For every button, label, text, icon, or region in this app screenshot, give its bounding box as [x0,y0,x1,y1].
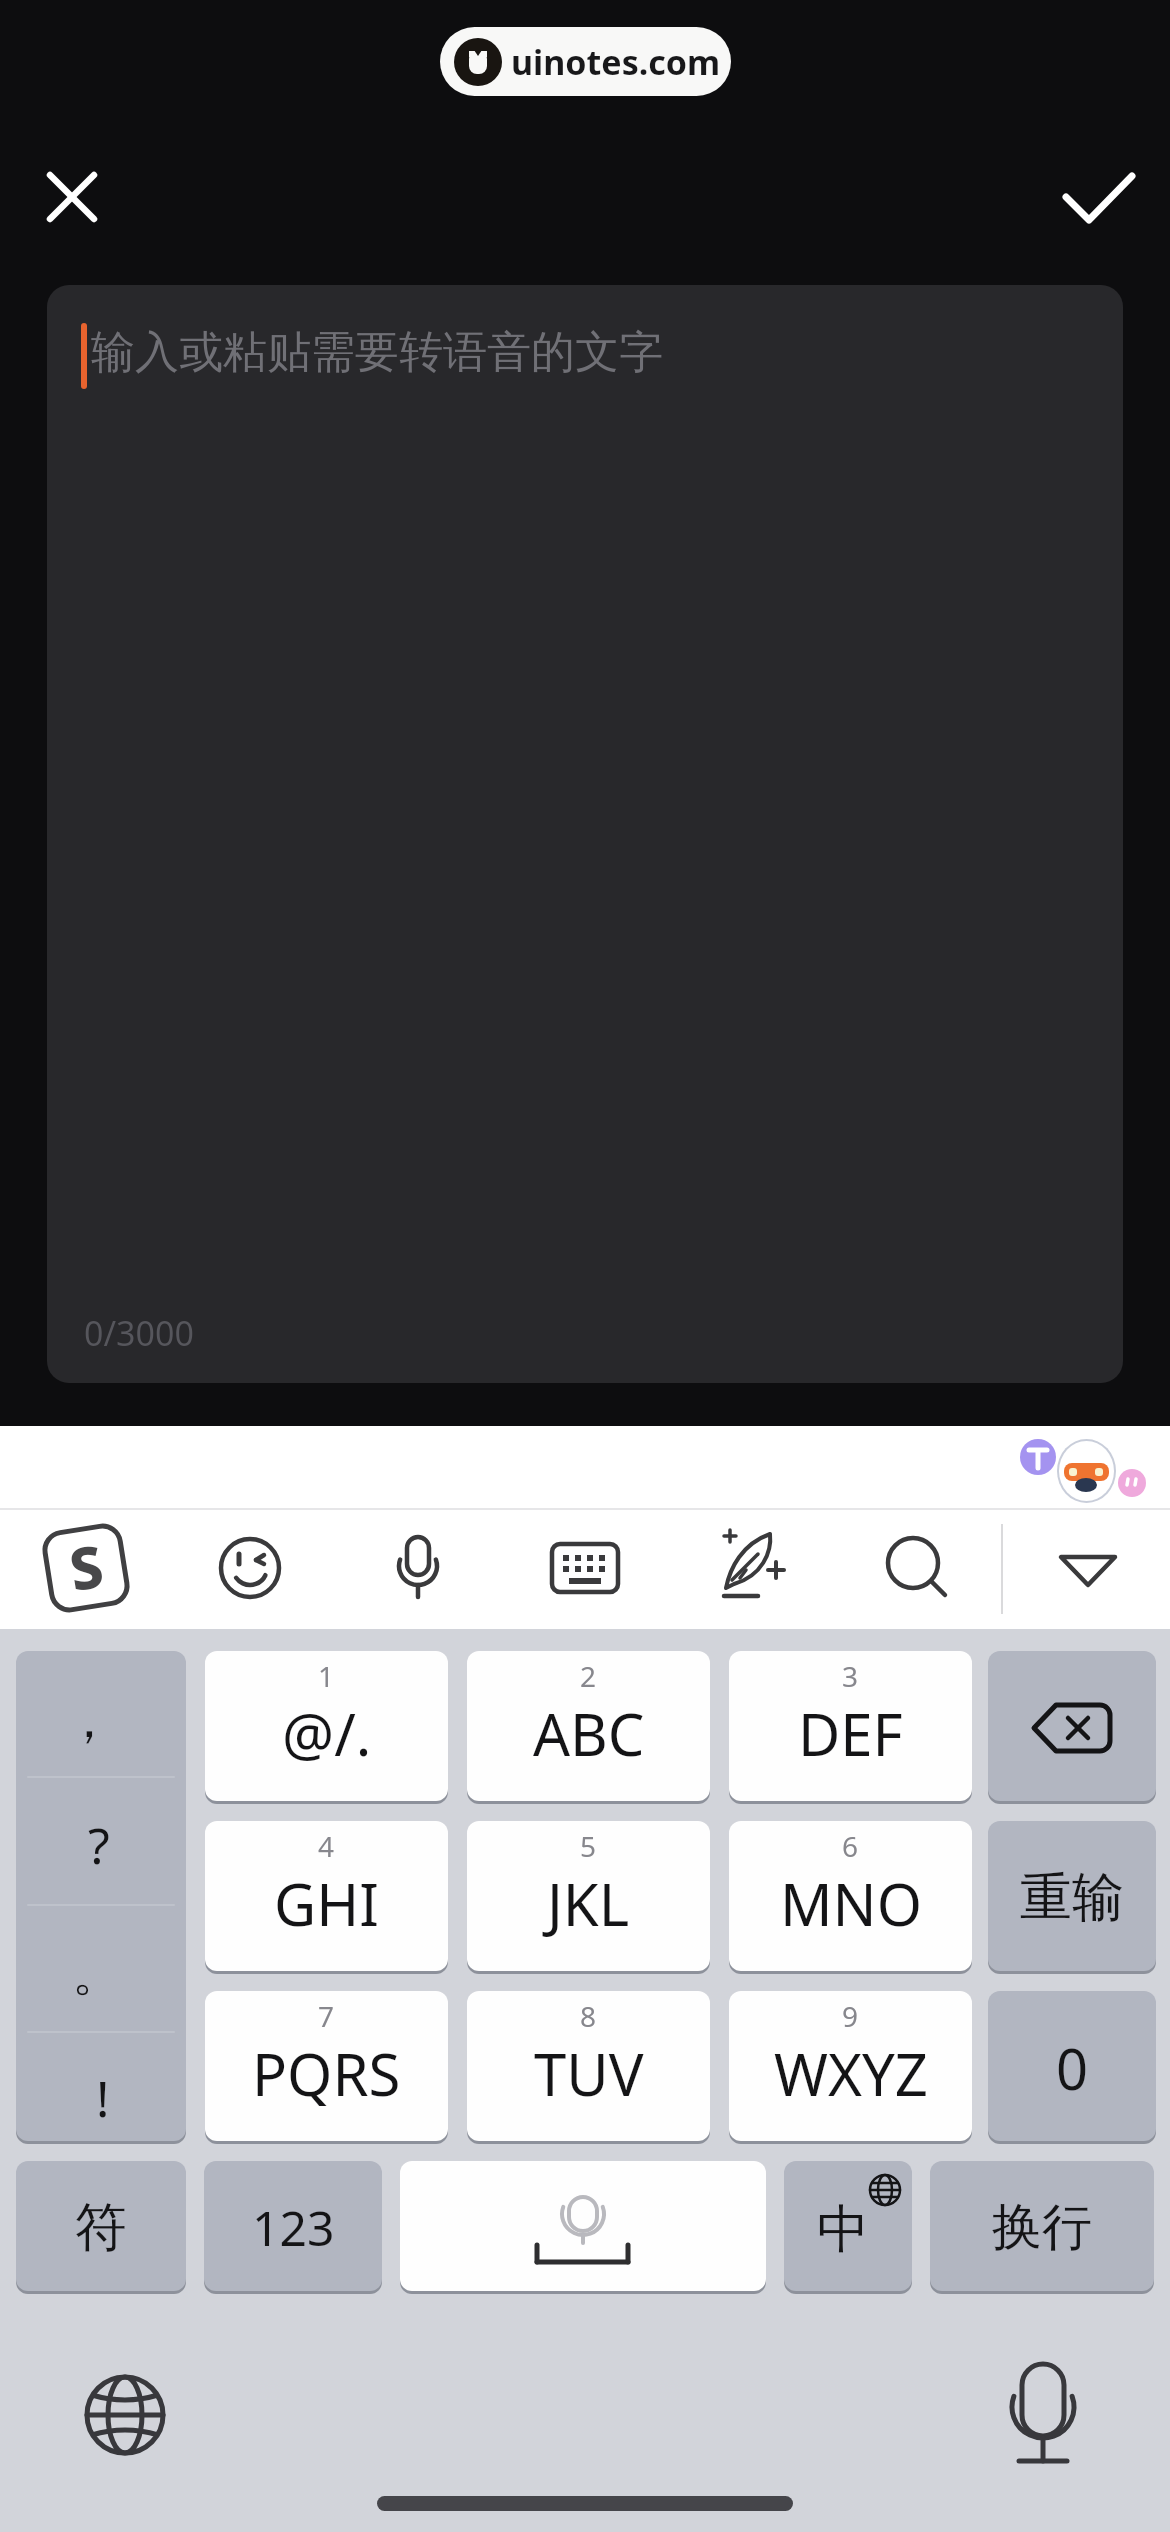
staticText: 9 [842,1997,859,2035]
staticText: 重输 [1020,1865,1124,1931]
staticText: uinotes.com [511,39,721,85]
button[interactable] [363,1509,473,1627]
button[interactable]: ， [16,1651,186,2144]
staticText: 2 [580,1657,597,1695]
button[interactable]: 6 [729,1821,972,1974]
button[interactable]: 输入或粘贴需要转语音的文字 [47,285,1123,1383]
staticText: ABC [533,1694,645,1773]
staticText: 换行 [992,2196,1092,2259]
staticText: 输入或粘贴需要转语音的文字 [91,325,663,380]
button[interactable] [697,1509,807,1627]
button[interactable]: 0 [988,1991,1156,2144]
button[interactable] [400,2161,766,2294]
button[interactable] [1054,157,1144,237]
staticText: 符 [75,2195,127,2261]
button[interactable]: 2 [467,1651,710,1804]
staticText: 1 [318,1657,335,1695]
staticText: 3 [842,1657,859,1695]
button[interactable]: 8 [467,1991,710,2144]
staticText: MNO [780,1864,922,1943]
staticText: 7 [318,1997,335,2035]
staticText: 5 [580,1827,597,1865]
staticText: DEF [798,1694,903,1773]
button[interactable] [975,2345,1111,2490]
button[interactable] [195,1509,305,1627]
button[interactable]: 9 [729,1991,972,2144]
staticText: S [64,1525,109,1608]
button[interactable]: 3 [729,1651,972,1804]
staticText: GHI [274,1864,379,1943]
button[interactable] [1033,1509,1143,1627]
button[interactable]: 123 [204,2161,382,2294]
button[interactable]: 重输 [988,1821,1156,1974]
button[interactable]: 7 [205,1991,448,2144]
staticText: TUV [534,2034,644,2113]
staticText: 0 [1056,2030,1089,2106]
button[interactable] [988,1651,1156,1804]
staticText: 中 [817,2197,869,2263]
staticText: 123 [252,2195,335,2260]
staticText: 0/3000 [84,1310,194,1356]
button[interactable]: 4 [205,1821,448,1974]
button[interactable] [863,1509,973,1627]
staticText: PQRS [252,2034,401,2113]
button[interactable]: S [31,1509,141,1627]
staticText: JKL [547,1864,630,1943]
staticText: WXYZ [774,2034,928,2113]
staticText: @/. [282,1694,372,1773]
staticText: ， [64,1689,114,1752]
button[interactable] [530,1509,640,1627]
staticText: 4 [318,1827,335,1865]
button[interactable]: 1 [205,1651,448,1804]
button[interactable] [36,161,108,233]
button[interactable]: 换行 [930,2161,1154,2294]
staticText: ? [88,1811,110,1879]
staticText: 6 [842,1827,859,1865]
button[interactable] [60,2350,190,2480]
button[interactable]: 符 [16,2161,186,2294]
staticText: ! [96,2064,110,2132]
button[interactable]: 中 [784,2161,912,2294]
staticText: 8 [580,1997,597,2035]
button[interactable]: 5 [467,1821,710,1974]
staticText: 。 [72,1942,122,2005]
